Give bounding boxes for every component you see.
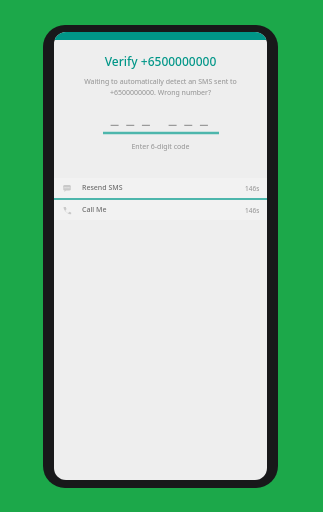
other: Resend SMS — [61, 182, 73, 194]
staticText: 146s — [245, 206, 260, 215]
staticText: Resend SMS — [82, 183, 123, 193]
staticText: Verify +6500000000 — [54, 53, 267, 69]
staticText: Waiting to automatically detect an SMS s… — [66, 77, 255, 97]
staticText: 146s — [245, 184, 260, 193]
staticText: Enter 6-digit code — [54, 142, 267, 152]
button[interactable]: Resend SMS — [54, 178, 267, 198]
button[interactable] — [103, 117, 219, 137]
staticText: Call Me — [82, 205, 107, 215]
other: Call Me — [61, 204, 73, 216]
button[interactable]: Call Me — [54, 200, 267, 220]
